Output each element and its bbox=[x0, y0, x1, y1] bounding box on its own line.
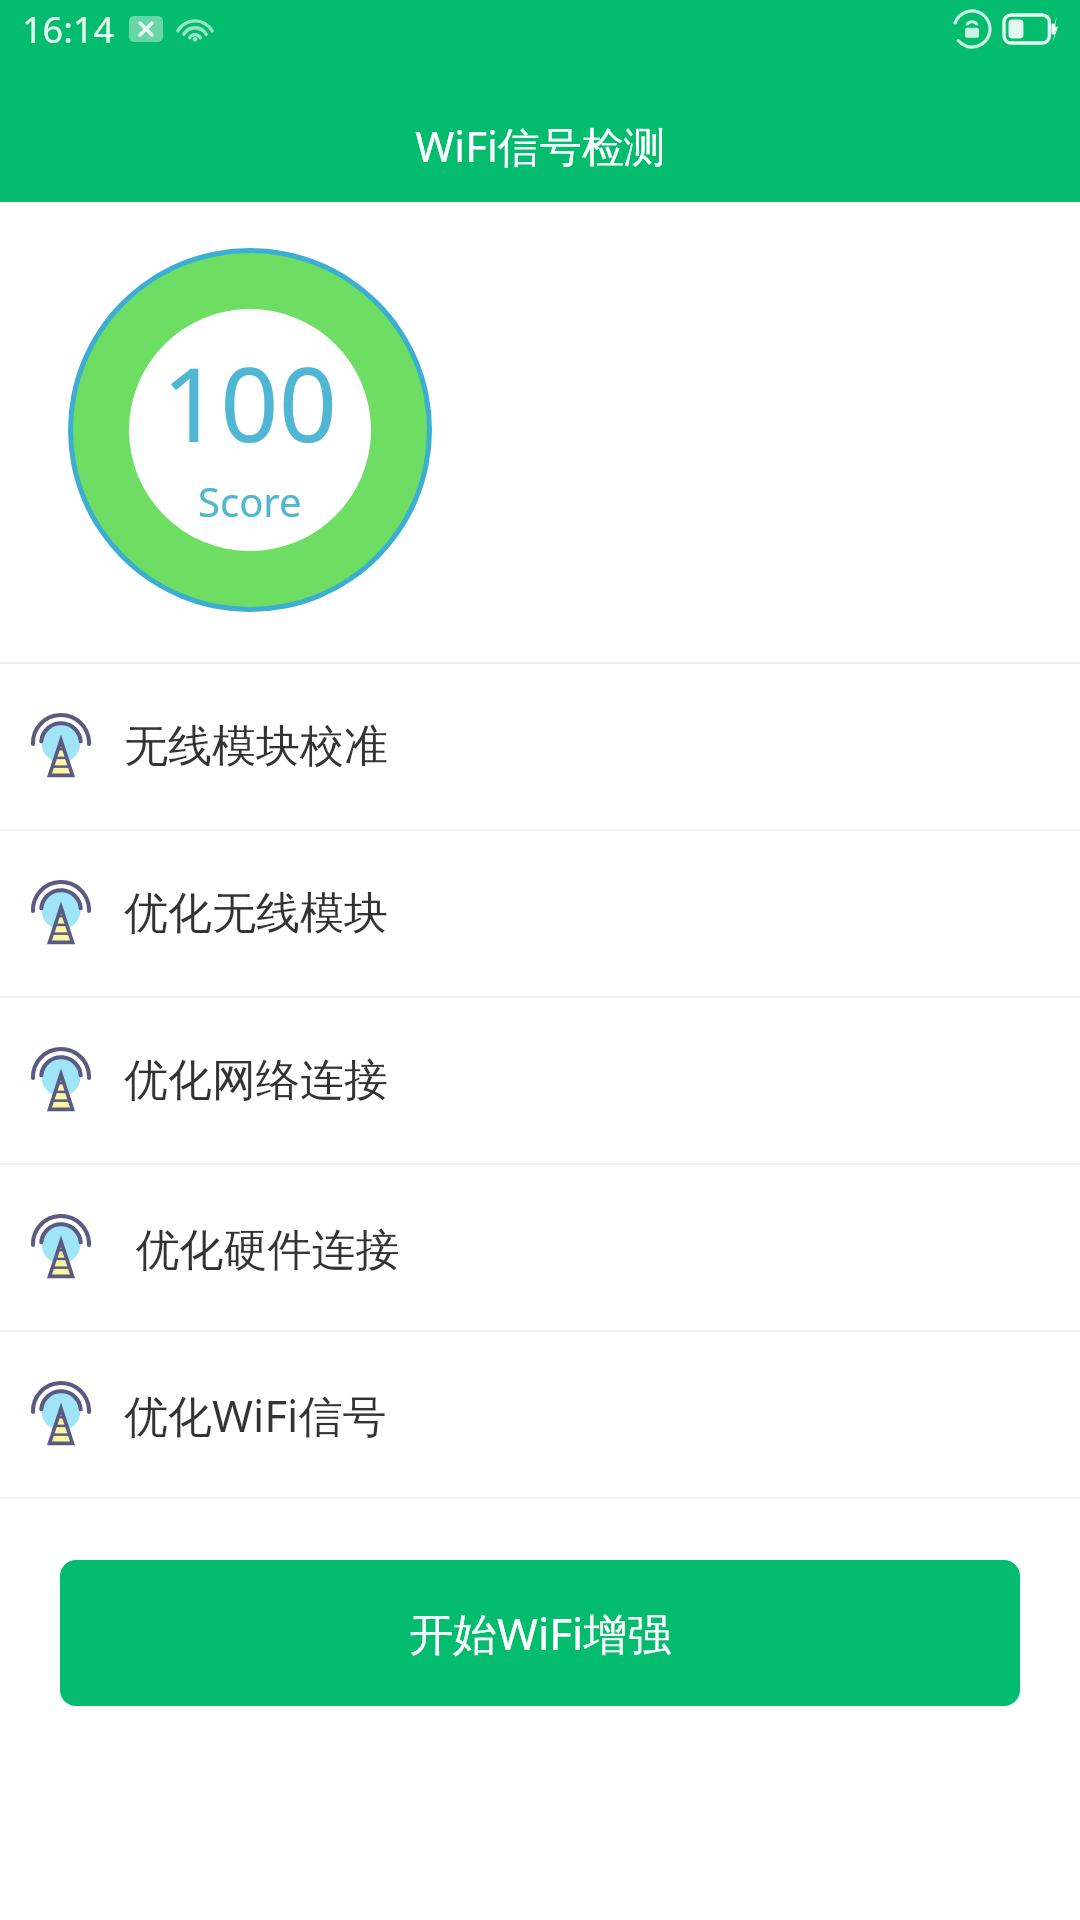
staticText: 16:14 bbox=[22, 5, 115, 54]
staticText: 100 bbox=[162, 333, 338, 472]
staticText: 优化硬件连接 bbox=[124, 1218, 400, 1278]
button[interactable]: 优化无线模块 bbox=[0, 831, 1080, 996]
staticText: 优化网络连接 bbox=[124, 1053, 388, 1108]
staticText: 无线模块校准 bbox=[124, 719, 388, 774]
staticText: 开始WiFi增强 bbox=[409, 1603, 672, 1663]
button[interactable]: 开始WiFi增强 bbox=[60, 1560, 1020, 1706]
staticText: WiFi信号检测 bbox=[415, 117, 666, 174]
staticText: 优化WiFi信号 bbox=[124, 1385, 387, 1445]
button[interactable]: 优化WiFi信号 bbox=[0, 1332, 1080, 1497]
staticText: 优化无线模块 bbox=[124, 886, 388, 941]
button[interactable]: 优化硬件连接 bbox=[0, 1165, 1080, 1330]
button[interactable]: 无线模块校准 bbox=[0, 664, 1080, 829]
staticText: Score bbox=[198, 474, 302, 528]
button[interactable]: 优化网络连接 bbox=[0, 998, 1080, 1163]
